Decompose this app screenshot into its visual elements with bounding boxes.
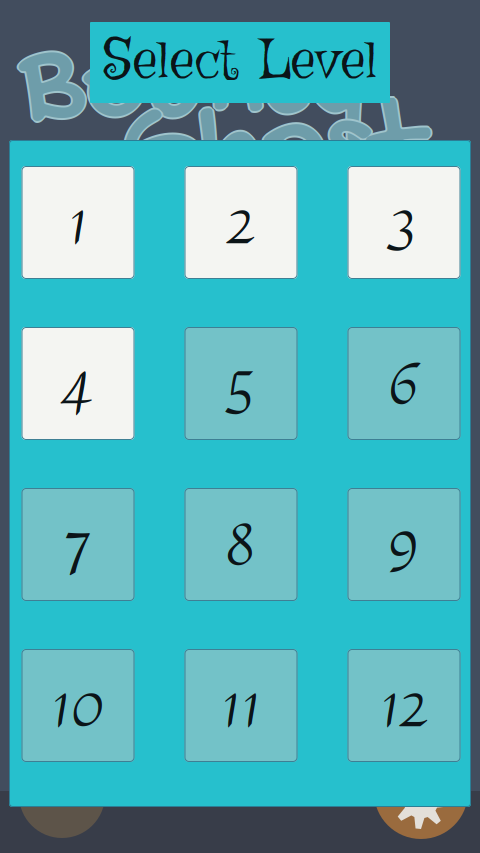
staticText: 9 xyxy=(388,503,420,586)
button[interactable]: 5 xyxy=(184,327,297,440)
button[interactable]: Sound xyxy=(19,752,105,838)
staticText: 10 xyxy=(51,664,105,747)
staticText: Bouncy xyxy=(20,14,365,159)
button[interactable]: 1 xyxy=(21,166,134,279)
button[interactable]: Select Level xyxy=(90,22,390,103)
staticText: Ghost xyxy=(120,76,422,221)
staticText: Ghost xyxy=(120,78,422,223)
staticText: Bouncy xyxy=(22,16,367,161)
staticText: Ghost xyxy=(122,78,424,223)
staticText: Bouncy xyxy=(20,18,365,163)
button[interactable]: 10 xyxy=(21,649,134,762)
staticText: 7 xyxy=(64,503,91,586)
staticText: 4 xyxy=(63,342,93,425)
staticText: 5 xyxy=(226,342,256,425)
staticText: 8 xyxy=(225,503,256,586)
button[interactable]: 3 xyxy=(347,166,460,279)
staticText: Ghost xyxy=(118,78,420,223)
staticText: Bouncy xyxy=(18,16,363,161)
staticText: Bouncy xyxy=(20,16,365,161)
button[interactable]: 9 xyxy=(347,488,460,601)
staticText: 3 xyxy=(390,181,417,264)
staticText: Select Level xyxy=(103,25,377,100)
button[interactable]: 6 xyxy=(347,327,460,440)
button[interactable]: 7 xyxy=(21,488,134,601)
staticText: 2 xyxy=(227,181,255,264)
button[interactable]: 4 xyxy=(21,327,134,440)
staticText: 11 xyxy=(221,664,261,747)
button[interactable]: 8 xyxy=(184,488,297,601)
button[interactable]: Settings xyxy=(374,745,468,839)
staticText: 6 xyxy=(388,342,420,425)
button[interactable]: 2 xyxy=(184,166,297,279)
staticText: 12 xyxy=(380,664,428,747)
staticText: Ghost xyxy=(120,80,422,225)
button[interactable]: 12 xyxy=(347,649,460,762)
staticText: 1 xyxy=(68,181,88,264)
button[interactable]: 11 xyxy=(184,649,297,762)
